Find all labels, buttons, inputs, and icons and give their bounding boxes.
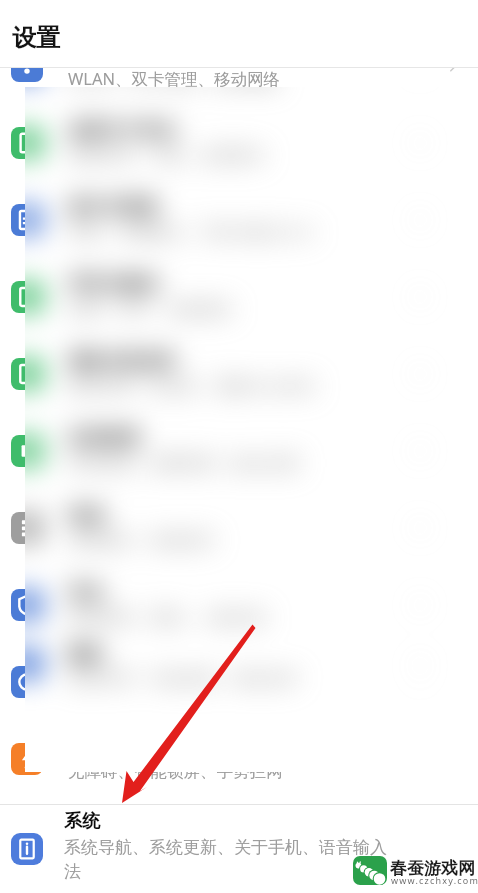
staticText: 通知与状态栏 [68,350,176,373]
button[interactable]: 桌面与个性化 [0,104,478,181]
staticText: 设置 [12,23,60,53]
staticText: 春蚕游戏网 [390,858,475,879]
button[interactable]: 隐私 [0,643,478,720]
staticText: 通知管理、状态栏、通知中心样式 [68,376,316,397]
button[interactable]: 声音与振动 [0,258,478,335]
staticText: 通知管理、状态栏、通知中心样式 [68,376,316,397]
staticText: 无障碍、智能锁屏、手势拦网 [68,761,283,782]
staticText: 亮度、护眼模式、字体与显示大小 [68,222,316,243]
button[interactable]: 应用管理 [0,412,478,489]
button[interactable]: 网络和连接 [0,27,478,104]
staticText: 电池 [68,504,104,527]
button[interactable]: 安全 [0,566,478,643]
button[interactable]: 系统 [0,804,478,893]
button[interactable]: 电池 [0,489,478,566]
staticText: 显示与亮度 [68,196,158,219]
staticText: 桌面布局、主题、息屏显示 [68,145,266,166]
button[interactable]: 显示与亮度 [0,181,478,258]
staticText: 电池 [68,504,104,527]
staticText: 音量、铃声、勿扰模式 [68,299,233,320]
staticText: 锁屏密码、指纹、人脸识别 [68,607,266,628]
staticText: 系统导航、系统更新、关于手机、语音输入法 [64,837,399,882]
staticText: 桌面布局、主题、息屏显示 [68,145,266,166]
staticText: 声音与振动 [68,273,158,296]
staticText: 隐私 [68,643,104,666]
staticText: WLAN、双卡管理、移动网络 [68,67,281,90]
staticText: 隐私 [68,658,104,681]
staticText: 应用设置、权限管理、默认应用 [68,453,299,474]
staticText: 音量、铃声、勿扰模式 [68,299,233,320]
staticText: 权限管理、特殊权限、隐私保护 [68,684,299,705]
staticText: 应用管理 [68,427,140,450]
staticText: 声音与振动 [68,273,158,296]
staticText: 桌面与个性化 [68,119,176,142]
button[interactable]: 通知与状态栏 [0,335,478,412]
staticText: 亮度、护眼模式、字体与显示大小 [68,222,316,243]
staticText: 安全 [68,581,104,604]
staticText: 显示与亮度 [68,196,158,219]
staticText: 权限管理、特殊权限、隐私保护 [68,669,299,685]
button[interactable]: 特色功能 [0,720,478,797]
staticText: 安全 [68,581,104,604]
staticText: 系统 [64,810,100,833]
staticText: 省电模式、耗电排行 [68,530,217,551]
staticText: 省电模式、耗电排行 [68,530,217,551]
staticText: 桌面与个性化 [68,119,176,142]
staticText: www.czchxy.com [391,874,478,886]
staticText: 通知与状态栏 [68,350,176,373]
staticText: 应用管理 [68,427,140,450]
staticText: 应用设置、权限管理、默认应用 [68,453,299,474]
staticText: 锁屏密码、指纹、人脸识别 [68,607,266,628]
